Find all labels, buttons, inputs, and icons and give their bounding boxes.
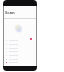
button[interactable] bbox=[4, 57, 36, 61]
button[interactable] bbox=[4, 49, 36, 53]
button[interactable] bbox=[4, 60, 36, 64]
button[interactable] bbox=[4, 38, 36, 42]
staticText: Scan bbox=[5, 10, 15, 16]
button[interactable] bbox=[4, 53, 36, 57]
button[interactable] bbox=[4, 46, 36, 50]
button[interactable] bbox=[4, 42, 36, 46]
